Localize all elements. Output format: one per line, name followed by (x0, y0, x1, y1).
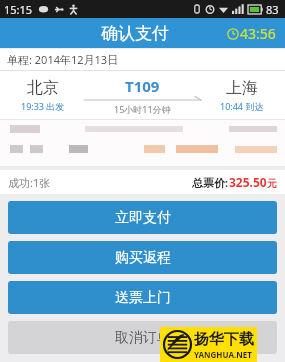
staticText: 送票上门 (115, 289, 171, 307)
staticText: 总票价: (192, 175, 229, 190)
staticText: 购买返程 (115, 249, 171, 267)
staticText: 确认支付 (101, 23, 169, 44)
staticText: 325.50 (229, 174, 267, 190)
staticText: 单程: 2014年12月13日 (7, 52, 119, 67)
staticText: 取消订单 (115, 329, 171, 347)
staticText: 15:15 (4, 2, 33, 17)
staticText: 立即支付 (115, 209, 171, 227)
button[interactable]: 取消订单 (8, 321, 277, 354)
staticText: T109 (125, 76, 160, 96)
staticText: 成功:1张 (8, 175, 51, 190)
staticText: 15小时11分钟 (114, 103, 171, 115)
button[interactable]: 立即支付 (8, 201, 277, 234)
staticText: 北京 (27, 78, 59, 98)
staticText: 元 (267, 177, 277, 190)
staticText: YANGHUA.NET (194, 349, 252, 360)
button[interactable]: 购买返程 (8, 241, 277, 274)
staticText: 43:56 (240, 24, 276, 43)
button[interactable]: 送票上门 (8, 281, 277, 314)
staticText: 83 (266, 2, 279, 17)
staticText: 10:44 到达 (220, 100, 264, 112)
staticText: 扬华下载 (194, 330, 254, 349)
staticText: 上海 (226, 78, 258, 98)
button[interactable]: Countdown timer (227, 24, 276, 43)
staticText: 19:33 出发 (21, 100, 65, 112)
